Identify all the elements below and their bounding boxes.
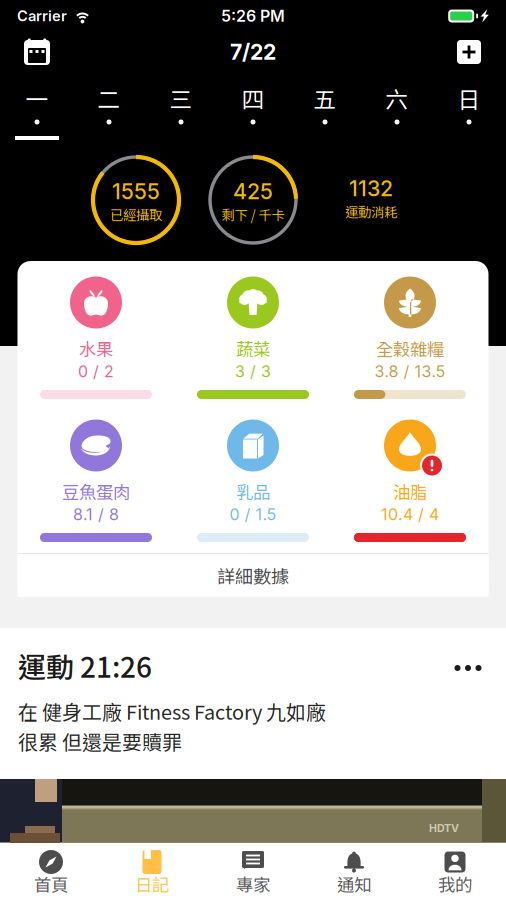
staticText: 8.1 / 8 [73,505,119,524]
staticText: 首頁 [34,871,68,897]
staticText: 一 [25,82,48,114]
button[interactable]: 乳品 [174,419,331,552]
staticText: 10.4 / 4 [381,505,439,524]
staticText: 通知 [337,871,371,897]
staticText: 五 [313,82,336,114]
button[interactable]: 日記 [101,844,202,900]
staticText: 全穀雜糧 [376,336,444,361]
staticText: 二 [97,82,120,114]
staticText: 0 / 1.5 [229,505,276,524]
staticText: 在 健身工廠 Fitness Factory 九如廠 [18,697,326,725]
button[interactable]: Calendar [15,33,59,71]
staticText: 425 [233,179,273,204]
staticText: 專家 [236,871,270,897]
button[interactable]: More options [448,650,488,680]
staticText: 7/22 [230,39,276,65]
staticText: 四 [241,82,264,114]
button[interactable]: 四 [217,75,289,141]
staticText: 日記 [135,871,169,897]
staticText: 運動 21:26 [18,645,152,686]
button[interactable]: Add [447,33,491,71]
staticText: 我的 [438,871,472,897]
button[interactable]: 三 [145,75,217,141]
staticText: 詳細數據 [217,562,289,589]
staticText: 油脂 [393,479,427,504]
button[interactable]: 專家 [202,844,303,900]
button[interactable]: 豆魚蛋肉 [17,419,174,552]
button[interactable]: 油脂 [331,419,488,552]
button[interactable]: 二 [73,75,145,141]
staticText: 豆魚蛋肉 [62,479,130,504]
staticText: 三 [169,82,192,114]
button[interactable]: 蔬菜 [174,276,331,409]
staticText: 已經攝取 [110,205,162,224]
button[interactable]: 詳細數據 [17,554,488,597]
staticText: 很累 但還是要贖罪 [18,727,182,755]
staticText: 六 [385,82,408,114]
staticText: 0 / 2 [78,362,114,381]
button[interactable]: 我的 [404,844,505,900]
staticText: 5:26 PM [221,6,285,26]
staticText: 3.8 / 13.5 [374,362,445,381]
button[interactable]: 首頁 [0,844,101,900]
staticText: Carrier [17,7,67,25]
staticText: 1132 [349,176,393,201]
button[interactable]: 通知 [303,844,404,900]
button[interactable]: 一 [1,75,73,141]
staticText: 1555 [112,179,160,204]
button[interactable]: 五 [289,75,361,141]
staticText: 日 [457,82,480,114]
staticText: 3 / 3 [235,362,271,381]
staticText: 剩下 / 千卡 [221,205,284,224]
staticText: 運動消耗 [345,202,397,221]
button[interactable]: 六 [361,75,433,141]
staticText: HDTV [429,821,459,834]
staticText: 水果 [79,336,113,361]
button[interactable]: 日 [433,75,505,141]
staticText: 蔬菜 [236,336,270,361]
button[interactable]: 水果 [17,276,174,409]
staticText: 乳品 [236,479,270,504]
button[interactable]: 全穀雜糧 [331,276,488,409]
